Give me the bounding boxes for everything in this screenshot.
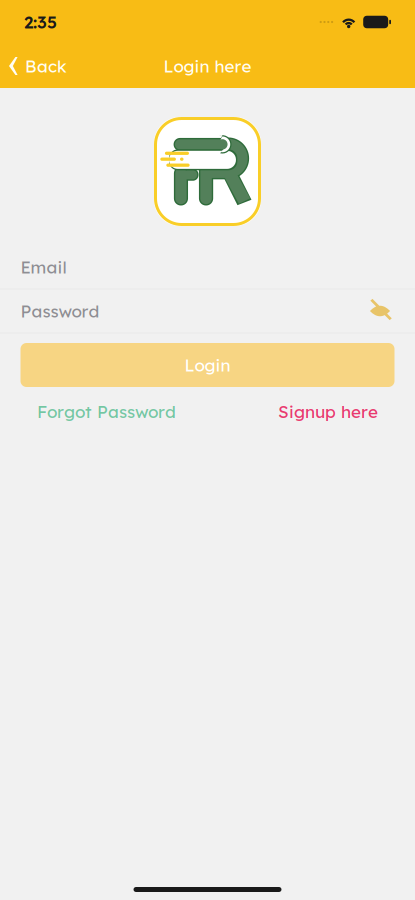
- button[interactable]: Signup here: [278, 401, 378, 422]
- staticText: Back: [25, 55, 67, 77]
- button[interactable]: Back: [0, 49, 76, 83]
- staticText: Forgot Password: [37, 401, 176, 422]
- staticText: Signup here: [278, 401, 378, 422]
- button[interactable]: Show password: [365, 298, 394, 323]
- staticText: Login: [184, 354, 230, 376]
- staticText: Email: [20, 256, 66, 278]
- staticText: Password: [20, 300, 99, 322]
- staticText: Login here: [163, 55, 251, 77]
- button[interactable]: Forgot Password: [37, 401, 176, 422]
- staticText: 2:35: [24, 11, 57, 33]
- button[interactable]: Login: [20, 343, 394, 387]
